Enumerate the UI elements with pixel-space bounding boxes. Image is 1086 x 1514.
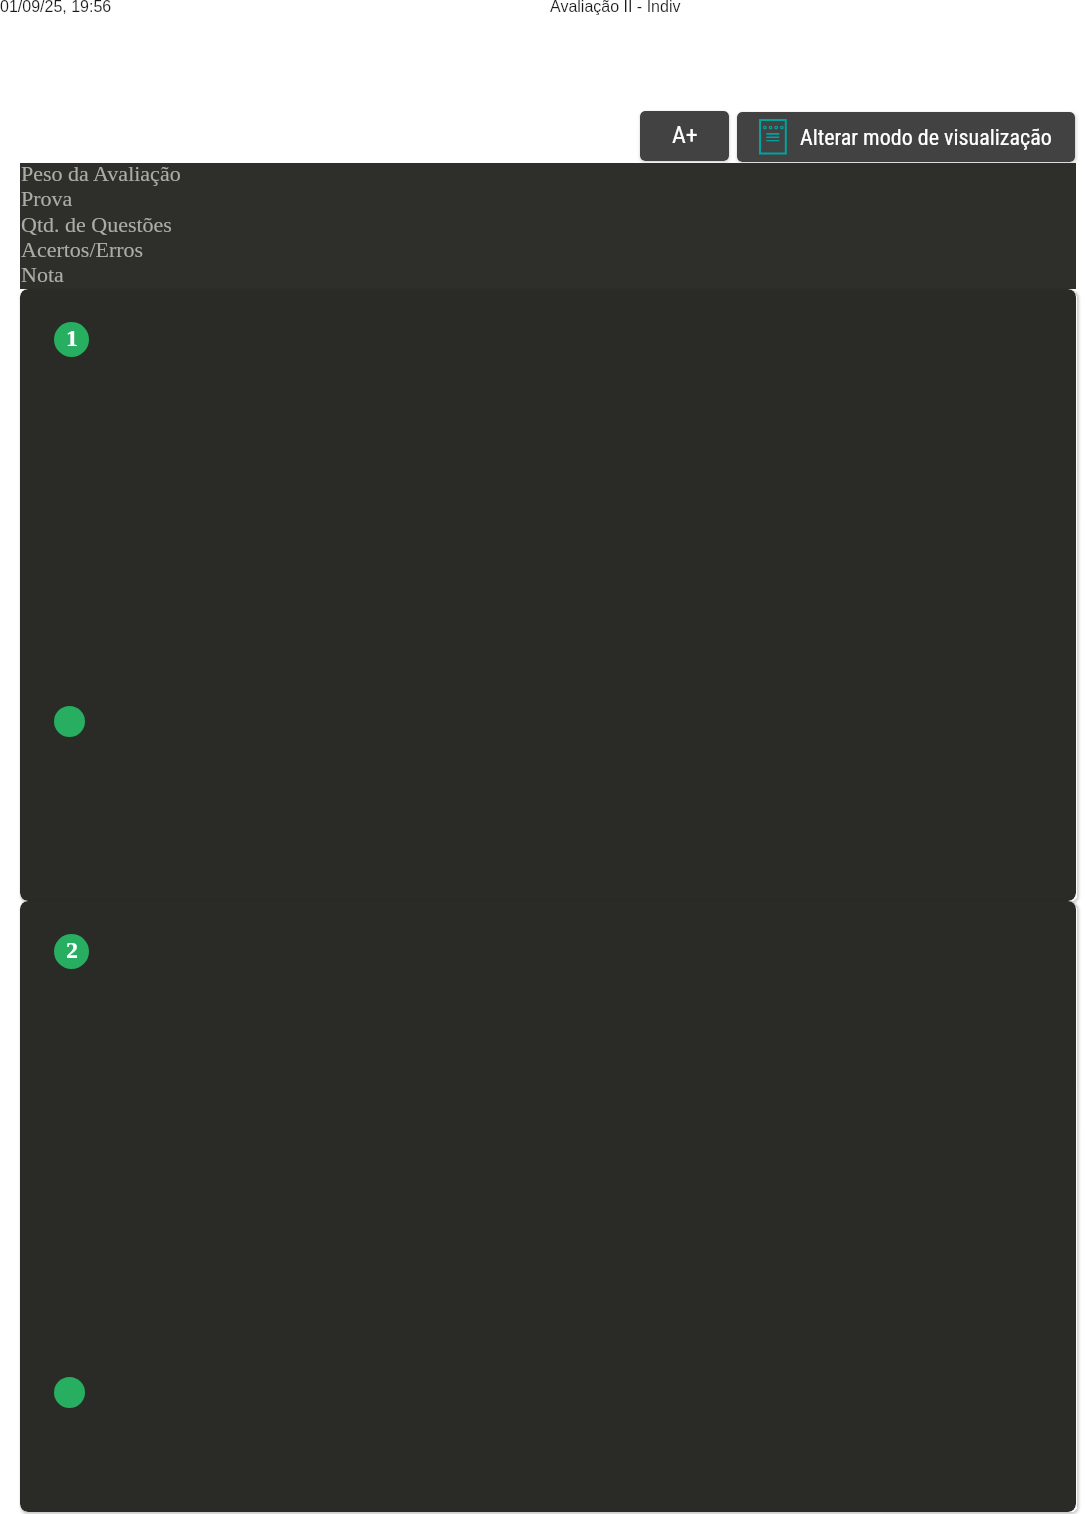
staticText: Avaliação II - Indiv bbox=[550, 0, 681, 16]
staticText: 2 bbox=[66, 937, 78, 964]
staticText: Qtd. de Questões bbox=[21, 212, 172, 236]
staticText: Alterar modo de visualização bbox=[800, 125, 1052, 151]
staticText: Acertos/Erros bbox=[21, 237, 144, 261]
staticText: 01/09/25, 19:56 bbox=[0, 0, 112, 16]
button[interactable]: Aumentar tamanho da fonte bbox=[640, 111, 729, 161]
button[interactable]: 2 bbox=[20, 901, 1076, 1512]
staticText: Nota bbox=[21, 262, 64, 286]
button[interactable]: Alterar modo de visualização bbox=[737, 112, 1075, 162]
staticText: A+ bbox=[672, 121, 698, 149]
staticText: Peso da Avaliação bbox=[21, 161, 181, 185]
staticText: Prova bbox=[21, 186, 73, 210]
button[interactable]: 1 bbox=[20, 289, 1076, 901]
staticText: 1 bbox=[66, 325, 78, 352]
